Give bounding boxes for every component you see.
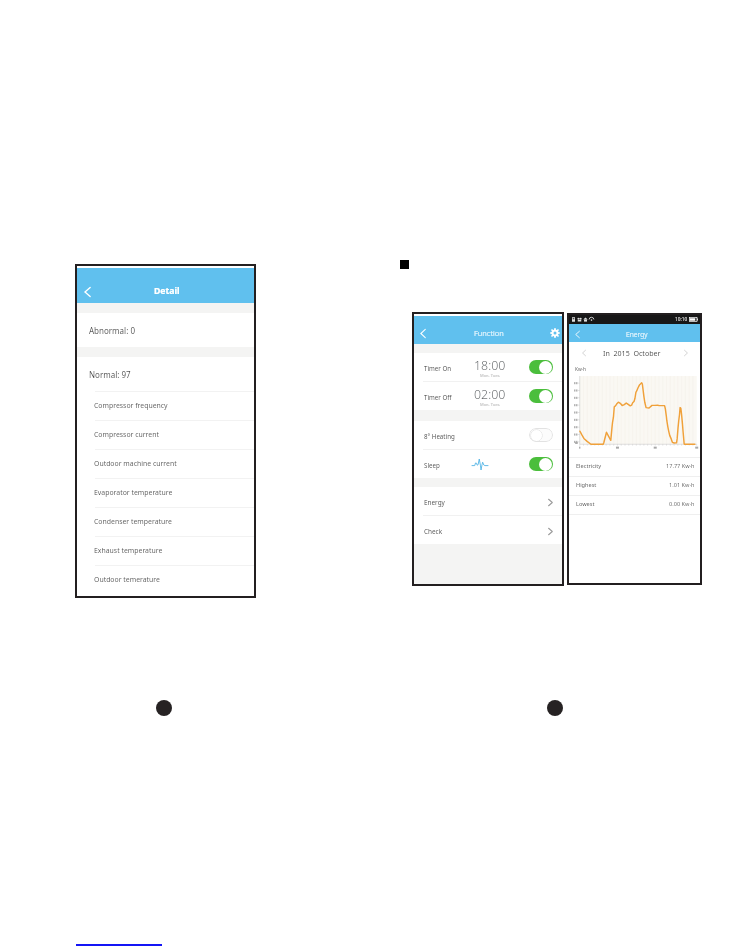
button[interactable]: Next month xyxy=(673,342,700,362)
staticText: Condenser temperature xyxy=(94,517,172,526)
staticText: Detail xyxy=(154,285,180,297)
button[interactable]: Back xyxy=(569,324,587,342)
button[interactable]: Previous month xyxy=(569,342,596,362)
staticText: Check xyxy=(424,527,443,536)
staticText: Outdoor temerature xyxy=(94,575,160,584)
staticText: Energy xyxy=(424,498,445,507)
button[interactable]: Electricity xyxy=(569,458,700,476)
staticText: Energy xyxy=(626,330,648,339)
staticText: Electricity xyxy=(576,462,602,470)
staticText: Highest xyxy=(576,481,597,489)
staticText: In 2015 October xyxy=(603,348,661,358)
staticText: Lowest xyxy=(576,500,595,508)
button[interactable]: Timer Off xyxy=(414,382,562,410)
button[interactable]: Back xyxy=(414,316,436,344)
button[interactable]: Compressor current xyxy=(77,421,254,449)
button[interactable]: Timer On xyxy=(414,353,562,381)
staticText: 1.01 Kw·h xyxy=(669,481,695,489)
button[interactable]: Outdoor machine current xyxy=(77,450,254,478)
button[interactable]: Sleep xyxy=(414,450,562,478)
button[interactable]: Function xyxy=(414,316,562,344)
button[interactable]: Switch on xyxy=(529,360,553,374)
button[interactable]: Abnormal: 0 xyxy=(77,313,254,347)
button[interactable]: Check xyxy=(414,516,562,544)
button[interactable]: Switch on xyxy=(529,389,553,403)
staticText: Compressor frequency xyxy=(94,401,168,410)
staticText: Timer Off xyxy=(424,393,452,401)
staticText: Sleep xyxy=(424,461,440,469)
button[interactable]: Highest xyxy=(569,477,700,495)
staticText: 18:00 xyxy=(474,357,506,374)
staticText: Evaporator temperature xyxy=(94,488,173,497)
button[interactable]: Compressor frequency xyxy=(77,392,254,420)
staticText: 02:00 xyxy=(474,386,506,403)
staticText: Compressor current xyxy=(94,430,159,439)
staticText: 0.00 Kw·h xyxy=(669,500,695,508)
button[interactable]: Back xyxy=(77,268,101,303)
button[interactable]: Lowest xyxy=(569,496,700,514)
staticText: Mon. Tues. xyxy=(480,402,501,407)
button[interactable]: Normal: 97 xyxy=(77,357,254,391)
staticText: 17.77 Kw·h xyxy=(666,462,695,470)
button[interactable]: Energy xyxy=(569,324,700,342)
button[interactable]: Outdoor temerature xyxy=(77,566,254,594)
button[interactable]: Switch off xyxy=(529,428,553,442)
button[interactable]: Detail xyxy=(77,268,254,303)
button[interactable]: Switch on xyxy=(529,457,553,471)
staticText: Normal: 97 xyxy=(89,369,131,380)
staticText: Abnormal: 0 xyxy=(89,325,135,336)
button[interactable]: Settings xyxy=(540,316,562,344)
button[interactable]: Condenser temperature xyxy=(77,508,254,536)
button[interactable]: Exhaust temperature xyxy=(77,537,254,565)
staticText: Mon. Tues. xyxy=(480,373,501,378)
button[interactable]: 8° Heating xyxy=(414,421,562,449)
staticText: Function xyxy=(474,328,504,338)
staticText: 8° Heating xyxy=(424,432,455,440)
staticText: Exhaust temperature xyxy=(94,546,163,555)
staticText: Timer On xyxy=(424,364,452,372)
button[interactable]: Energy xyxy=(414,487,562,515)
staticText: Outdoor machine current xyxy=(94,459,177,468)
button[interactable]: Evaporator temperature xyxy=(77,479,254,507)
staticText: Kw·h xyxy=(575,366,586,373)
staticText: 10:10 xyxy=(675,316,688,323)
